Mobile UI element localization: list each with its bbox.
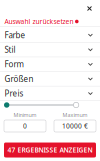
staticText: Minimum <box>13 111 36 119</box>
button[interactable]: Auswahl zurücksetzen <box>0 17 79 26</box>
button[interactable]: Schließen <box>83 2 100 15</box>
staticText: 10000 € <box>62 122 88 130</box>
staticText: Farbe <box>4 30 25 40</box>
staticText: 47 ERGEBNISSE ANZEIGEN <box>7 146 92 154</box>
staticText: Maximum <box>62 111 87 119</box>
staticText: Preis <box>4 88 23 99</box>
staticText: 0 <box>23 122 27 130</box>
button[interactable]: 0 <box>4 120 46 132</box>
button[interactable]: Farbe <box>0 28 100 43</box>
staticText: Auswahl zurücksetzen <box>4 17 73 26</box>
staticText: Stil <box>4 44 15 55</box>
button[interactable]: 47 ERGEBNISSE ANZEIGEN <box>4 142 96 157</box>
button[interactable]: Größen <box>0 72 100 86</box>
button[interactable]: Form <box>0 57 100 72</box>
button[interactable]: 10000 € <box>54 120 96 132</box>
button[interactable]: Stil <box>0 43 100 57</box>
staticText: Form <box>4 59 23 69</box>
staticText: Größen <box>4 73 33 84</box>
button[interactable]: Preis <box>0 86 100 101</box>
